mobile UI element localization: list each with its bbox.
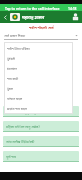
button[interactable]: नाव कमी (4, 73, 73, 83)
button[interactable]: पूर्ण नाव (3, 151, 79, 161)
button[interactable]: जन्म तारीख (दि/म/वर्ष) (3, 136, 79, 146)
button[interactable]: अर्ज प्रकार निवडा (4, 31, 78, 40)
button[interactable]: Back (0, 11, 10, 23)
staticText: महिला वर्ग (जर लागू असेल) (6, 124, 40, 129)
staticText: नाव कमी (7, 76, 19, 81)
button[interactable]: दुरुस्ती (4, 53, 73, 63)
button[interactable]: दुबार (4, 83, 73, 93)
staticText: नवीन शिधा पत्रिका (7, 46, 30, 51)
staticText: अर्जदार प्रकार (कुटुंब प्रमुख) (6, 109, 40, 114)
staticText: 14:18 (68, 6, 77, 10)
staticText: महाराष्ट्र शासन (22, 15, 68, 20)
staticText: जन्म तारीख (दि/म/वर्ष) (6, 139, 35, 144)
button[interactable]: स्थलांतर (4, 63, 73, 73)
staticText: अर्ज प्रकार निवडा (4, 33, 75, 38)
button[interactable]: नवीन शिधा पत्रिका (4, 43, 73, 53)
button[interactable]: सदस्य नाव बदल (4, 103, 73, 113)
button[interactable]: महिला वर्ग (जर लागू असेल) (3, 121, 79, 131)
staticText: पत्त्यात बदल (7, 96, 23, 101)
staticText: पूर्ण नाव (6, 154, 16, 159)
staticText: Tap to return to the call interface (5, 6, 68, 10)
staticText: स्थलांतर (7, 66, 17, 71)
staticText: नवीन नोंदणी अर्ज (29, 25, 54, 30)
button[interactable]: Government emblem (68, 11, 82, 23)
button[interactable]: पत्त्यात बदल (4, 93, 73, 103)
staticText: दुबार (7, 86, 14, 91)
button[interactable]: अर्जदार प्रकार (कुटुंब प्रमुख) (3, 106, 79, 116)
staticText: दुरुस्ती (7, 56, 15, 61)
staticText: सदस्य नाव बदल (7, 106, 27, 111)
